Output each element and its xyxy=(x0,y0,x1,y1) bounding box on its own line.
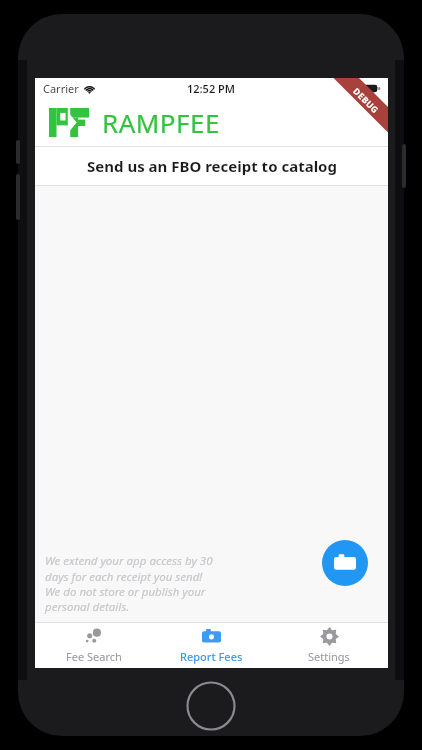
button[interactable]: Fee Search xyxy=(35,623,152,668)
button[interactable]: Send us an FBO receipt to catalog xyxy=(35,147,388,185)
staticText: Settings xyxy=(308,649,350,664)
staticText: RAMPFEE xyxy=(102,105,221,140)
button[interactable]: Settings xyxy=(270,623,388,668)
staticText: DEBUG xyxy=(350,85,381,116)
button[interactable]: Take receipt photo xyxy=(322,540,368,586)
staticText: Report Fees xyxy=(180,649,243,664)
staticText: Fee Search xyxy=(66,649,122,664)
button[interactable]: Report Fees xyxy=(152,623,270,668)
staticText: Send us an FBO receipt to catalog xyxy=(87,156,337,176)
other: RampFee logo xyxy=(49,108,89,137)
button[interactable]: Home xyxy=(186,681,236,731)
button[interactable]: RampFee logo xyxy=(35,99,388,146)
staticText: 12:52 PM xyxy=(187,81,236,96)
staticText: We extend your app access by 30 days for… xyxy=(45,553,217,614)
staticText: Carrier xyxy=(43,81,79,96)
